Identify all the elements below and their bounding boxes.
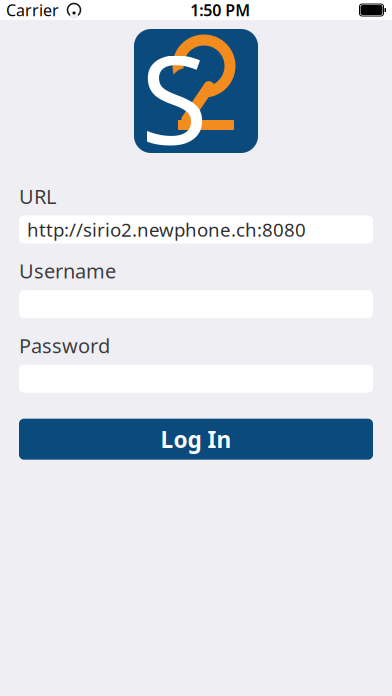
staticText bbox=[59, 0, 67, 21]
staticText: 1:50 PM bbox=[190, 0, 250, 21]
staticText: Carrier bbox=[6, 0, 59, 21]
staticText: http://sirio2.newphone.ch:8080 bbox=[27, 217, 306, 242]
staticText: Password bbox=[19, 332, 110, 359]
staticText: URL bbox=[19, 183, 56, 210]
staticText: S bbox=[140, 16, 207, 178]
button[interactable]: Log In bbox=[19, 419, 373, 460]
staticText: Log In bbox=[160, 424, 231, 454]
staticText: Username bbox=[19, 258, 116, 284]
